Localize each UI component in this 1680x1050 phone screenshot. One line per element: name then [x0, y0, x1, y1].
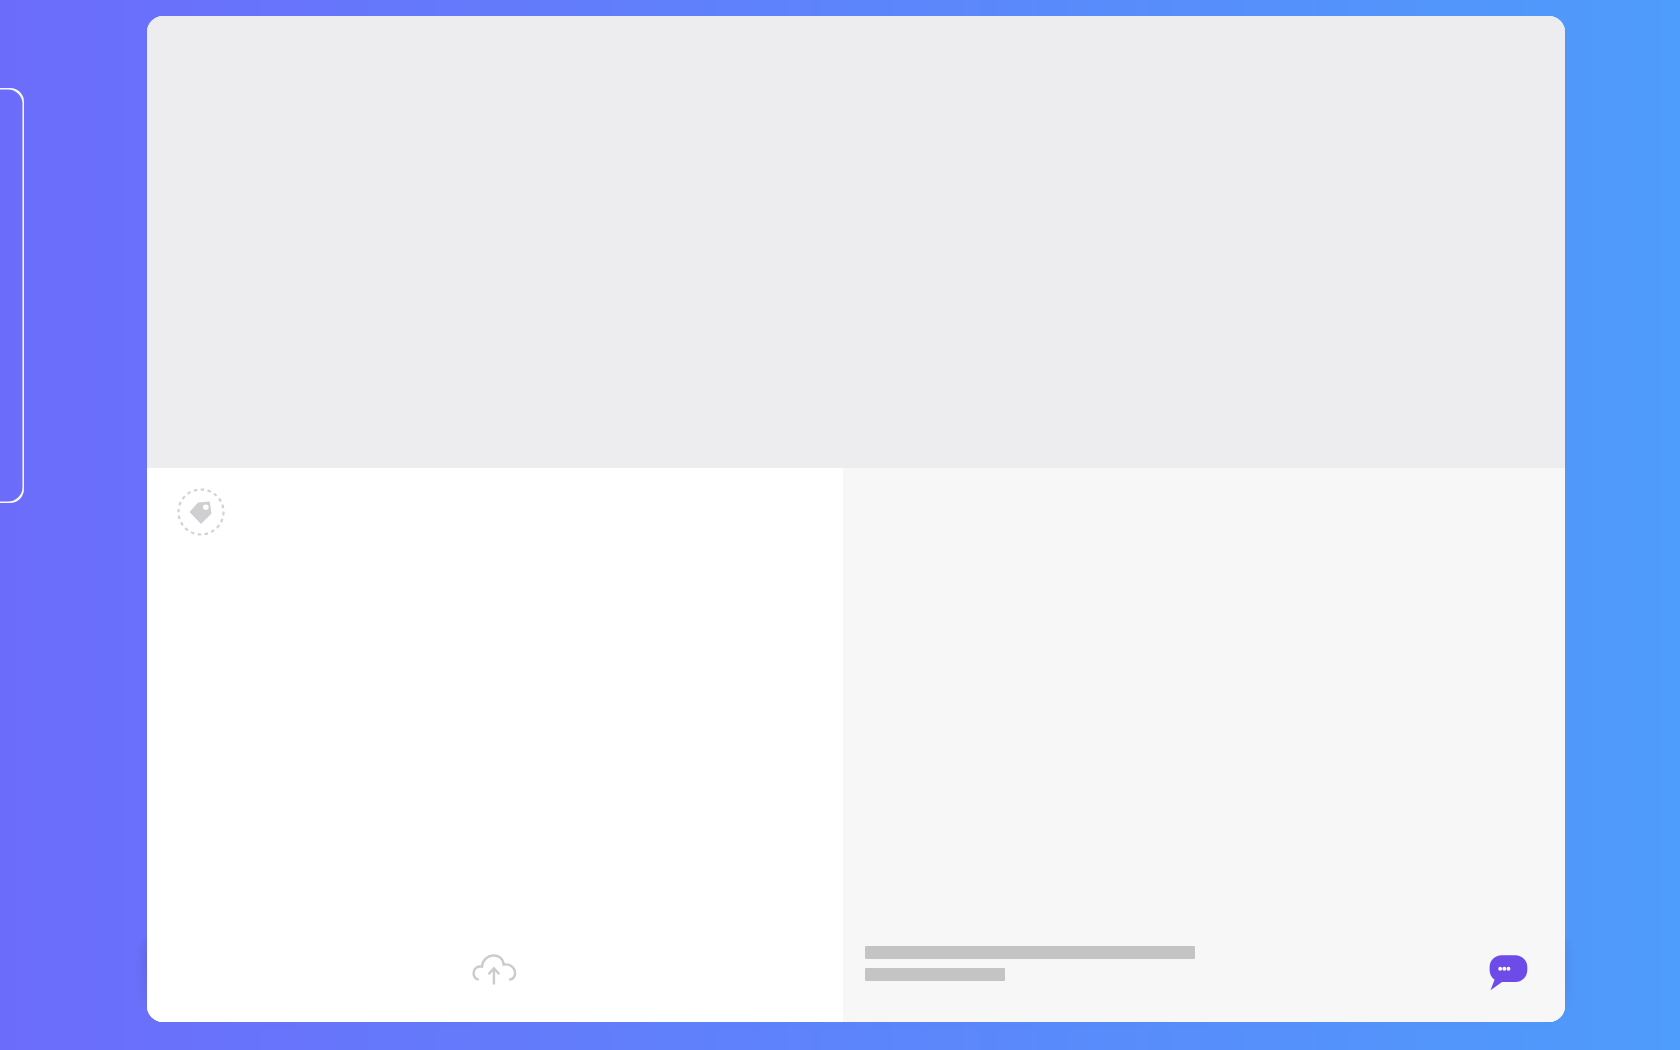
button[interactable]: Add tag: [177, 488, 225, 536]
button[interactable]: Comments: [1485, 948, 1531, 994]
button[interactable]: Upload attachment: [468, 944, 522, 998]
